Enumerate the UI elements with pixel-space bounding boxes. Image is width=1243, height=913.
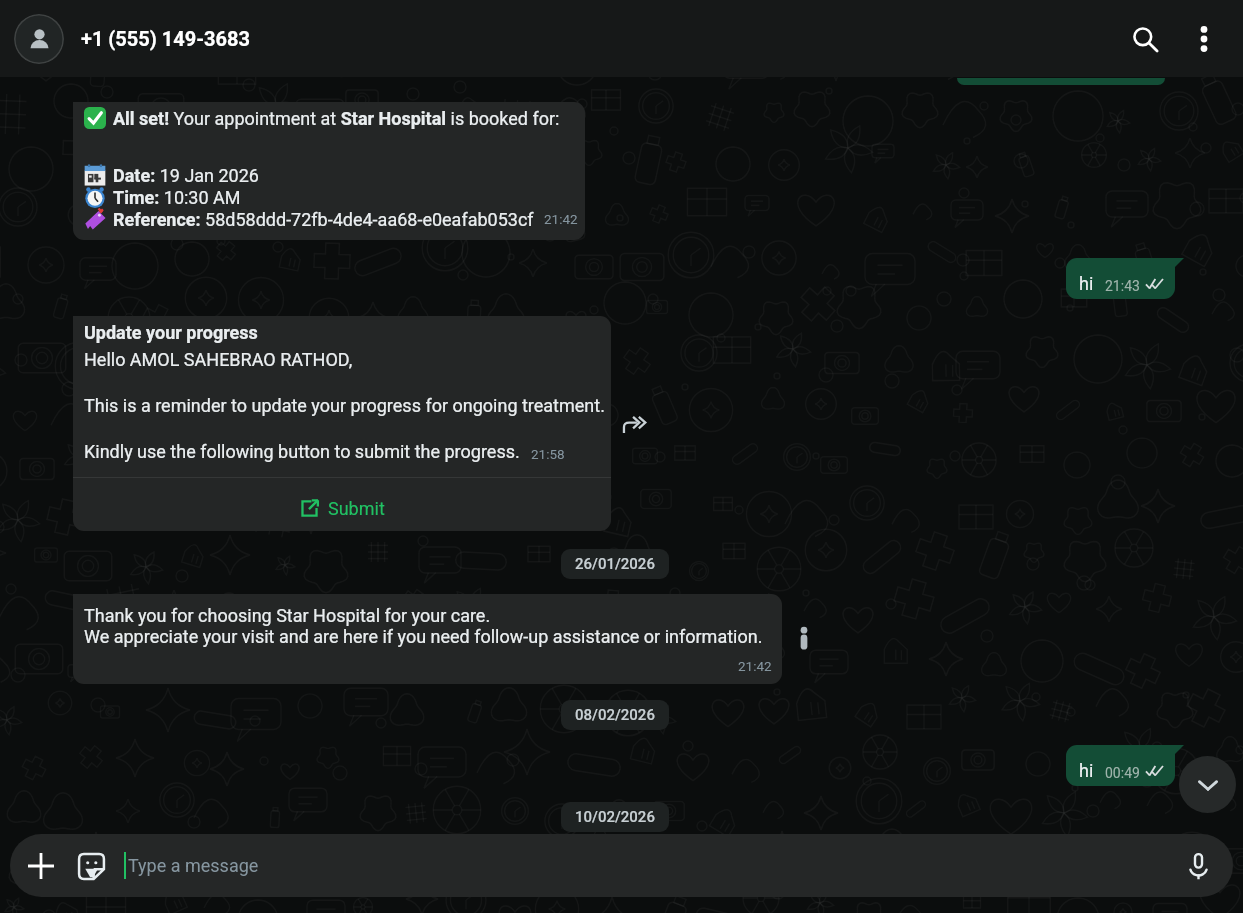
staticText: We appreciate your visit and are here if… bbox=[84, 626, 763, 647]
staticText: 10/02/2026 bbox=[575, 808, 655, 826]
button[interactable]: Submit bbox=[73, 486, 611, 531]
button[interactable]: Stickers bbox=[69, 844, 113, 888]
button[interactable]: hi bbox=[1066, 745, 1175, 786]
staticText: 26/01/2026 bbox=[575, 555, 655, 573]
button[interactable]: Voice message bbox=[1173, 841, 1223, 891]
button[interactable]: All set! Your appointment at Star Hospit… bbox=[73, 102, 585, 240]
button[interactable]: Scroll to bottom bbox=[1179, 756, 1236, 813]
button[interactable]: 26/01/2026 bbox=[561, 549, 669, 579]
staticText: Hello AMOL SAHEBRAO RATHOD, bbox=[84, 349, 353, 370]
staticText: Type a message bbox=[128, 855, 259, 876]
staticText: Update your progress bbox=[84, 322, 258, 343]
button[interactable]: Info bbox=[800, 628, 808, 650]
button[interactable]: Contact photo bbox=[14, 14, 64, 64]
button[interactable]: Update your progress bbox=[73, 316, 611, 531]
button[interactable]: Thank you for choosing Star Hospital for… bbox=[73, 594, 782, 684]
staticText: All set! Your appointment at Star Hospit… bbox=[113, 108, 560, 129]
staticText: 21:58 bbox=[531, 446, 565, 462]
staticText: Date: 19 Jan 2026 bbox=[113, 165, 259, 186]
button[interactable]: Forward bbox=[623, 412, 647, 436]
staticText: Kindly use the following button to submi… bbox=[84, 441, 520, 462]
staticText: Reference: 58d58ddd-72fb-4de4-aa68-e0eaf… bbox=[113, 209, 534, 230]
button[interactable]: 10/02/2026 bbox=[561, 802, 669, 832]
button[interactable]: More options bbox=[1182, 17, 1226, 61]
staticText: 21:43 bbox=[1105, 278, 1140, 294]
staticText: 08/02/2026 bbox=[575, 706, 655, 724]
staticText: 21:42 bbox=[544, 211, 578, 227]
button[interactable]: Attach bbox=[19, 844, 63, 888]
staticText: hi bbox=[1079, 273, 1094, 294]
staticText: hi bbox=[1079, 760, 1094, 781]
staticText: Submit bbox=[328, 498, 385, 519]
staticText: This is a reminder to update your progre… bbox=[84, 395, 605, 416]
staticText: 21:42 bbox=[738, 658, 772, 674]
staticText: Time: 10:30 AM bbox=[113, 187, 241, 208]
staticText: +1 (555) 149-3683 bbox=[81, 27, 250, 50]
staticText: Thank you for choosing Star Hospital for… bbox=[84, 605, 491, 626]
button[interactable]: 08/02/2026 bbox=[561, 700, 669, 730]
staticText: 00:49 bbox=[1105, 765, 1140, 781]
button[interactable]: hi bbox=[1066, 258, 1175, 299]
button[interactable]: Search bbox=[1121, 15, 1169, 63]
